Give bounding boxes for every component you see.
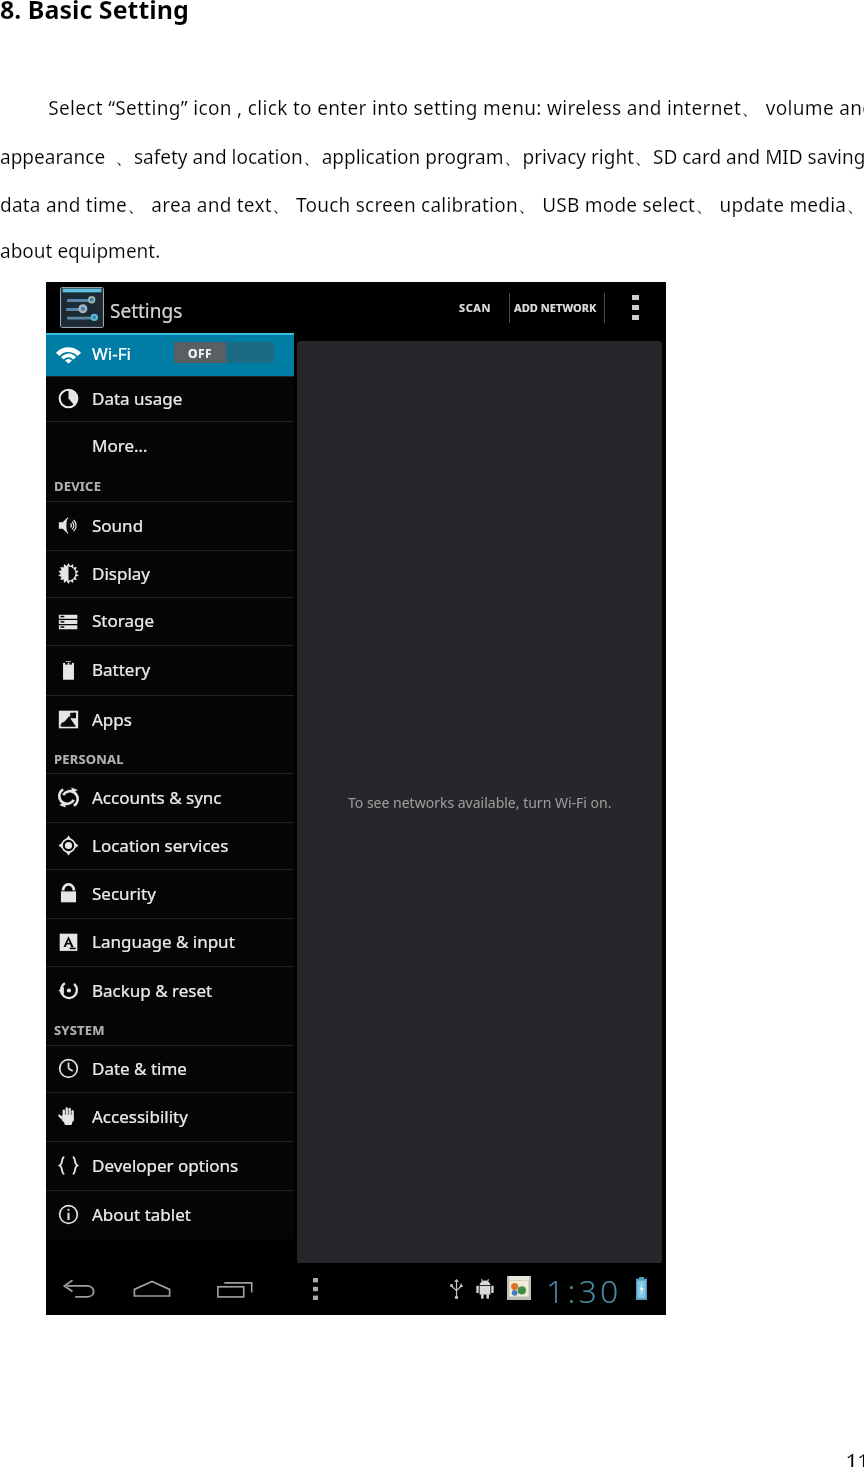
button[interactable]: Back xyxy=(56,1267,104,1311)
button[interactable]: Battery xyxy=(46,646,294,695)
staticText: Location services xyxy=(92,834,229,857)
button[interactable]: Backup & reset xyxy=(46,967,294,1015)
staticText: Backup & reset xyxy=(92,979,213,1002)
button[interactable]: Menu xyxy=(297,1267,333,1311)
staticText: PERSONAL xyxy=(54,750,124,768)
button[interactable]: More options xyxy=(610,282,660,333)
staticText: More… xyxy=(92,434,148,457)
button[interactable]: Location services xyxy=(46,823,294,869)
staticText: Display xyxy=(92,562,150,585)
button[interactable]: Recent apps xyxy=(211,1267,259,1311)
button[interactable]: Apps xyxy=(46,696,294,744)
staticText: Developer options xyxy=(92,1154,239,1177)
button[interactable]: Date & time xyxy=(46,1046,294,1092)
button[interactable]: Developer options xyxy=(46,1142,294,1190)
button[interactable]: Accessibility xyxy=(46,1093,294,1141)
staticText: Select “Setting” icon , click to enter i… xyxy=(6,95,864,121)
button[interactable]: Sound xyxy=(46,502,294,550)
button[interactable]: OFF xyxy=(174,342,274,363)
staticText: Wi-Fi xyxy=(92,342,131,365)
staticText: Battery xyxy=(92,658,151,681)
staticText: 11 xyxy=(846,1448,864,1467)
staticText: Apps xyxy=(92,708,132,731)
staticText: About tablet xyxy=(92,1203,191,1226)
staticText: To see networks available, turn Wi-Fi on… xyxy=(348,793,612,812)
staticText: Security xyxy=(92,882,156,905)
staticText: Accessibility xyxy=(92,1105,188,1128)
staticText: Data usage xyxy=(92,387,183,410)
button[interactable]: SCAN xyxy=(445,287,506,328)
staticText: Accounts & sync xyxy=(92,786,222,809)
staticText: Storage xyxy=(92,609,155,632)
staticText: SYSTEM xyxy=(54,1021,105,1039)
button[interactable]: About tablet xyxy=(46,1191,294,1239)
button[interactable]: Home xyxy=(128,1267,176,1311)
staticText: data and time、 area and text、 Touch scre… xyxy=(0,192,864,218)
staticText: 1:30 xyxy=(546,1269,622,1313)
button[interactable]: Storage xyxy=(46,598,294,645)
button[interactable]: Wi-Fi xyxy=(46,333,294,376)
staticText: appearance 、safety and location、applicat… xyxy=(0,144,864,170)
button[interactable]: Data usage xyxy=(46,377,294,421)
staticText: ADD NETWORK xyxy=(514,300,597,315)
staticText: Language & input xyxy=(92,930,235,953)
staticText: OFF xyxy=(188,345,213,361)
button[interactable]: Security xyxy=(46,870,294,918)
button[interactable]: Display xyxy=(46,551,294,597)
button[interactable]: More… xyxy=(46,422,294,470)
staticText: Sound xyxy=(92,514,144,537)
staticText: SCAN xyxy=(459,300,492,315)
staticText: DEVICE xyxy=(54,477,102,495)
staticText: 8. Basic Setting xyxy=(0,0,189,26)
staticText: Settings xyxy=(110,298,183,324)
button[interactable]: Accounts & sync xyxy=(46,774,294,822)
button[interactable]: ADD NETWORK xyxy=(502,287,609,328)
staticText: about equipment. xyxy=(0,238,161,264)
staticText: Date & time xyxy=(92,1057,187,1080)
button[interactable]: Language & input xyxy=(46,919,294,966)
